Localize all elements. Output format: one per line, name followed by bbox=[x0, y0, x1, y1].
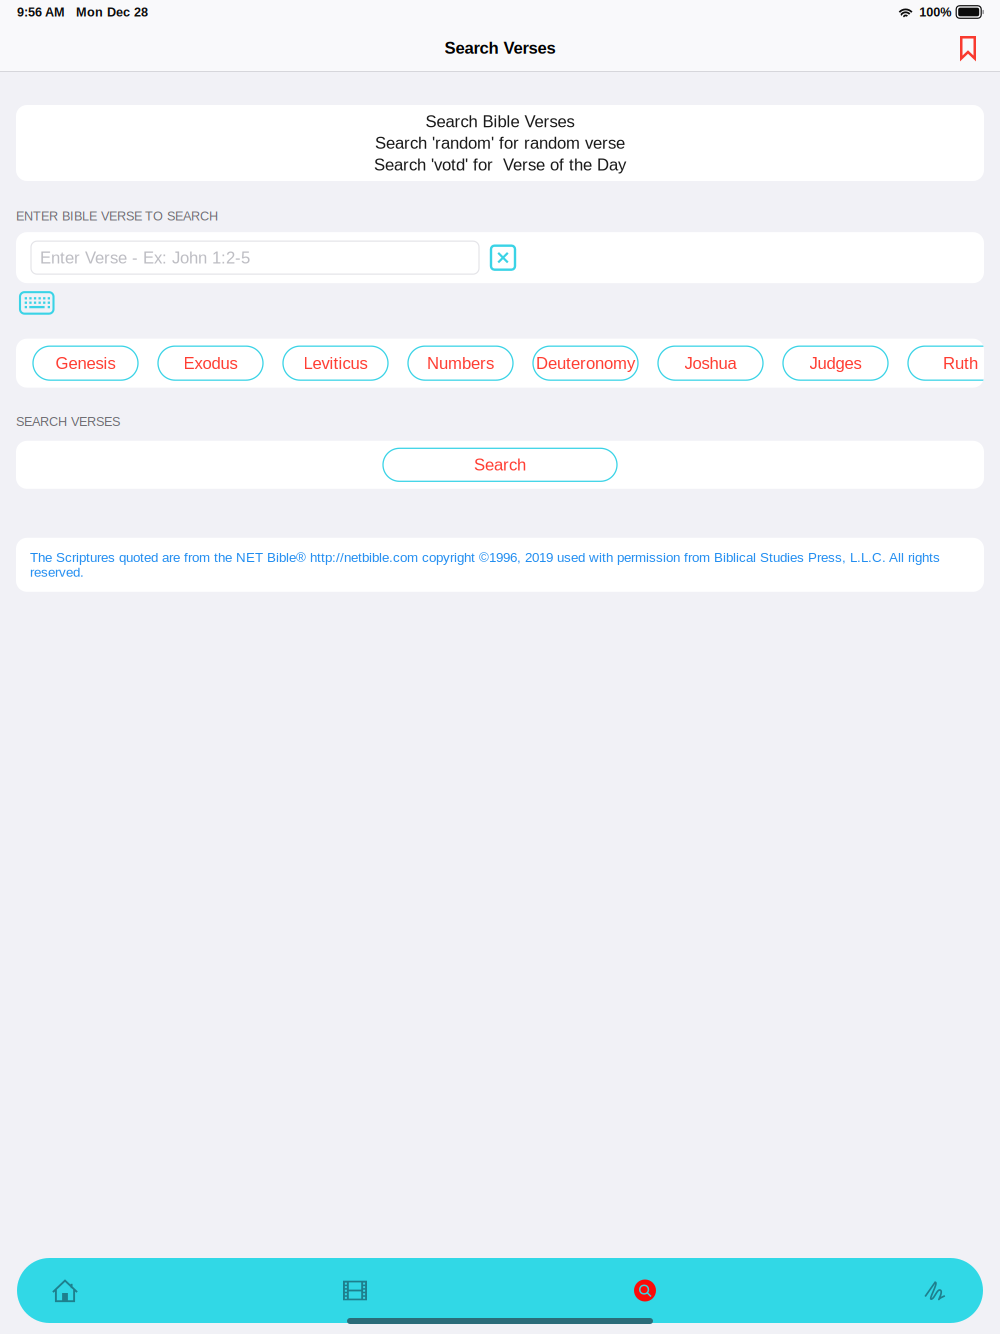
button[interactable]: Home bbox=[30, 1262, 100, 1318]
staticText: Genesis bbox=[55, 354, 115, 372]
staticText: SEARCH VERSES bbox=[16, 415, 120, 429]
button[interactable]: Notes bbox=[900, 1262, 970, 1318]
staticText: Search Verses bbox=[444, 39, 555, 57]
staticText: 100% bbox=[919, 5, 951, 19]
button[interactable]: Clear search field bbox=[479, 246, 515, 270]
staticText: ENTER BIBLE VERSE TO SEARCH bbox=[16, 209, 218, 223]
staticText: Enter Verse - Ex: John 1:2-5 bbox=[40, 248, 250, 267]
button[interactable]: Videos bbox=[320, 1262, 390, 1318]
button[interactable]: Genesis bbox=[33, 346, 138, 380]
button[interactable]: Search bbox=[610, 1262, 680, 1318]
button[interactable]: Joshua bbox=[658, 346, 763, 380]
staticText: Search Bible Verses bbox=[425, 112, 574, 131]
button[interactable]: Deuteronomy bbox=[533, 346, 638, 380]
button[interactable]: Exodus bbox=[158, 346, 263, 380]
staticText: Search 'random' for random verse bbox=[375, 134, 625, 152]
staticText: Exodus bbox=[183, 354, 237, 372]
staticText: Judges bbox=[809, 354, 861, 372]
button[interactable]: Toggle keyboard bbox=[20, 292, 53, 314]
button[interactable]: Bookmarks bbox=[944, 26, 992, 70]
staticText: 9:56 AM bbox=[17, 5, 65, 19]
button[interactable]: Search bbox=[383, 448, 617, 481]
staticText: Mon Dec 28 bbox=[76, 5, 148, 19]
staticText: Search 'votd' for Verse of the Day bbox=[374, 155, 626, 174]
staticText: Search bbox=[474, 455, 526, 474]
button[interactable]: Leviticus bbox=[283, 346, 388, 380]
staticText: Joshua bbox=[684, 354, 736, 372]
button[interactable]: Judges bbox=[783, 346, 888, 380]
staticText: Ruth bbox=[943, 354, 978, 372]
staticText: Numbers bbox=[427, 354, 494, 372]
staticText: Leviticus bbox=[303, 354, 367, 372]
button[interactable]: Numbers bbox=[408, 346, 513, 380]
staticText: The Scriptures quoted are from the NET B… bbox=[30, 550, 940, 580]
staticText: Deuteronomy bbox=[536, 354, 635, 372]
button[interactable]: Ruth bbox=[908, 346, 1000, 380]
